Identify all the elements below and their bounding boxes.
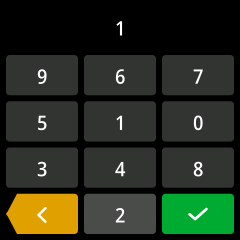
staticText: 4: [115, 155, 125, 182]
staticText: 9: [37, 62, 47, 89]
button[interactable]: 9: [6, 55, 78, 95]
staticText: 1: [115, 109, 125, 136]
staticText: 1: [115, 14, 125, 41]
button[interactable]: 0: [162, 101, 234, 141]
button[interactable]: 1: [84, 101, 156, 141]
button[interactable]: 5: [6, 101, 78, 141]
button[interactable]: 6: [84, 55, 156, 95]
staticText: 0: [193, 109, 203, 136]
staticText: 7: [193, 62, 203, 89]
staticText: 8: [193, 155, 203, 182]
staticText: 2: [115, 201, 125, 228]
button[interactable]: 4: [84, 147, 156, 188]
button[interactable]: Delete: [6, 194, 78, 234]
button[interactable]: 3: [6, 147, 78, 188]
button[interactable]: Confirm: [162, 194, 234, 234]
button[interactable]: 7: [162, 55, 234, 95]
button[interactable]: 8: [162, 147, 234, 188]
staticText: 6: [115, 62, 125, 89]
staticText: 3: [37, 155, 47, 182]
staticText: 5: [37, 109, 47, 136]
button[interactable]: 2: [84, 194, 156, 234]
